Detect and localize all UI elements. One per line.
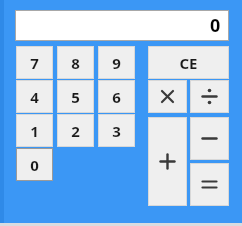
button[interactable]: 6 [98,80,135,113]
button[interactable]: 1 [16,114,53,147]
button[interactable]: Equals [190,163,229,206]
button[interactable]: 8 [57,46,94,79]
button[interactable]: 0 [16,148,53,181]
staticText: 5 [71,87,80,107]
staticText: 6 [112,87,121,107]
button[interactable]: Divide [190,80,229,113]
staticText: 4 [30,87,39,107]
button[interactable]: 4 [16,80,53,113]
button[interactable]: CE [148,46,229,79]
staticText: 7 [30,53,39,73]
button[interactable]: Multiply [148,80,187,113]
staticText: 0 [210,13,221,38]
button[interactable]: 5 [57,80,94,113]
staticText: 1 [30,121,39,141]
staticText: CE [179,53,198,73]
button[interactable]: 7 [16,46,53,79]
staticText: 8 [71,53,80,73]
button[interactable]: 3 [98,114,135,147]
button[interactable]: 9 [98,46,135,79]
button[interactable]: Minus [190,117,229,160]
button[interactable]: Plus [148,117,187,206]
button[interactable]: 2 [57,114,94,147]
staticText: 9 [112,53,121,73]
staticText: 2 [71,121,80,141]
staticText: 3 [112,121,121,141]
staticText: 0 [30,155,39,175]
button[interactable]: 0 [15,10,229,41]
